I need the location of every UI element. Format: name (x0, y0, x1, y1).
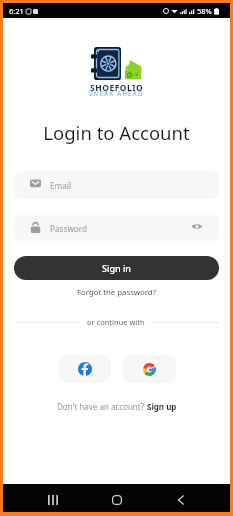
button[interactable]: Email (14, 171, 219, 199)
staticText: Don't have an account? (57, 401, 147, 412)
staticText: Sign up (147, 401, 177, 412)
staticText: SNEAK AHEAD (89, 89, 144, 98)
button[interactable]: Sign up (147, 401, 177, 412)
button[interactable]: Back (164, 486, 197, 514)
staticText: Login to Account (3, 120, 230, 145)
button[interactable]: Sign in (14, 256, 219, 280)
button[interactable]: Forgot the password? (3, 287, 230, 298)
staticText: Password (50, 223, 88, 234)
staticText: or continue with (87, 317, 145, 327)
staticText: SHOEFOLIO (90, 82, 144, 94)
button[interactable]: Show password (191, 221, 203, 235)
button[interactable]: Recent apps (36, 486, 69, 514)
staticText: 6:21 (9, 6, 24, 16)
button[interactable]: Password (14, 214, 219, 242)
staticText: Email (50, 180, 72, 191)
staticText: 58% (197, 6, 212, 16)
button[interactable]: Home (100, 486, 133, 514)
staticText: Sign in (102, 262, 132, 274)
button[interactable]: Continue with Facebook (58, 355, 111, 383)
button[interactable]: Continue with Google (123, 355, 176, 383)
